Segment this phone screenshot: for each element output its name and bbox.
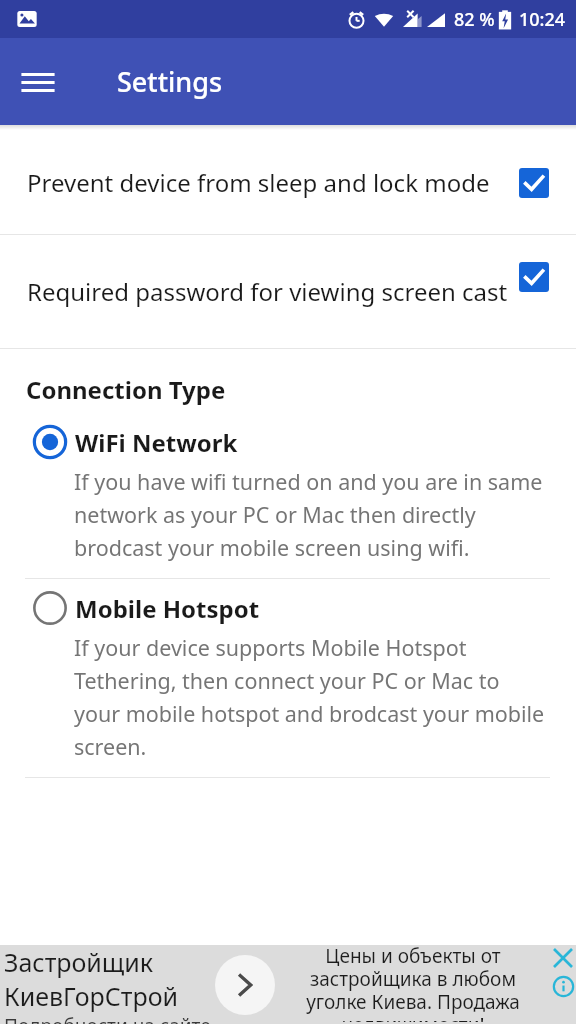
staticText: 10:24 — [519, 7, 566, 32]
staticText: Подробности на сайте — [4, 1013, 211, 1024]
staticText: Застройщик — [4, 945, 154, 979]
button[interactable]: Mobile Hotspot — [0, 579, 576, 777]
button[interactable]: Ad information — [550, 973, 576, 999]
staticText: If your device supports Mobile Hotspot T… — [74, 633, 546, 761]
staticText: Connection Type — [26, 373, 226, 406]
button[interactable]: WiFi Network — [0, 425, 576, 578]
button[interactable]: Required password for viewing screen cas… — [0, 235, 576, 348]
staticText: If you have wifi turned on and you are i… — [74, 467, 546, 562]
staticText: Settings — [117, 63, 223, 100]
staticText: Prevent device from sleep and lock mode — [27, 166, 509, 199]
staticText: WiFi Network — [75, 426, 238, 459]
button[interactable]: Застройщик — [0, 945, 576, 1024]
staticText: КиевГорСтрой — [4, 979, 179, 1013]
staticText: Цены и объекты от застройщика в любом уг… — [278, 943, 548, 1022]
button[interactable]: Open navigation menu — [16, 60, 60, 104]
staticText: Required password for viewing screen cas… — [27, 275, 509, 308]
button[interactable]: Open ad — [215, 955, 275, 1015]
staticText: 82 % — [454, 7, 495, 32]
button[interactable]: Close ad — [550, 945, 576, 971]
button[interactable]: Prevent device from sleep and lock mode — [0, 131, 576, 234]
staticText: Mobile Hotspot — [75, 592, 260, 625]
